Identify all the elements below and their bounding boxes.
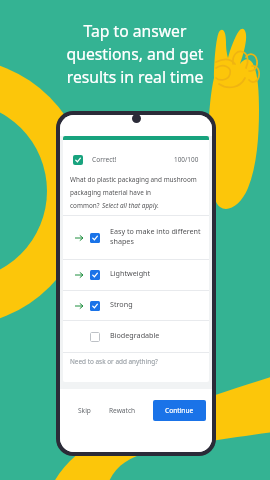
- staticText: Easy to make into different shapes: [110, 226, 201, 246]
- staticText: Select all that apply.: [102, 201, 159, 210]
- staticText: Skip: [78, 406, 91, 415]
- staticText: Rewatch: [109, 406, 136, 415]
- staticText: What do plastic packaging and mushroom: [70, 175, 197, 184]
- button[interactable]: Rewatch: [103, 401, 142, 420]
- staticText: packaging material have in: [70, 188, 152, 197]
- staticText: Continue: [165, 406, 194, 415]
- staticText: Correct!: [92, 155, 117, 164]
- staticText: Lightweight: [110, 268, 151, 278]
- staticText: Strong: [110, 299, 133, 309]
- staticText: Biodegradable: [110, 330, 160, 340]
- staticText: common?: [70, 201, 102, 210]
- staticText: 100/100: [174, 155, 199, 164]
- button[interactable]: Skip: [72, 401, 97, 420]
- button[interactable]: Biodegradable: [63, 321, 209, 352]
- staticText: Need to ask or add anything?: [70, 357, 158, 366]
- button[interactable]: Strong: [63, 291, 209, 320]
- button[interactable]: Easy to make into different shapes: [63, 216, 209, 259]
- button[interactable]: Continue: [153, 400, 206, 421]
- staticText: Tap to answer questions, and get results…: [0, 20, 270, 88]
- button[interactable]: Lightweight: [63, 260, 209, 290]
